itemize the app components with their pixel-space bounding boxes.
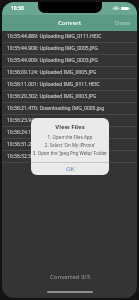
button[interactable]: 10:36:21.470: Downloading IMG_0005.jpg <box>2 103 137 115</box>
staticText: 2. Select 'On My iPhone' <box>31 142 109 148</box>
button[interactable]: 10:36:11.001: Uploaded IMG_0111.HEIC <box>2 79 137 91</box>
staticText: Convert <box>58 19 82 27</box>
button[interactable]: 10:35:44.909: Uploading IMG_0003.JPG <box>2 55 137 67</box>
staticText: 10:36:23.945: Downloading IMG_0003.jpg <box>7 117 105 124</box>
staticText: 10:36:21.470: Downloading IMG_0005.jpg <box>7 105 105 112</box>
staticText: Done <box>115 19 131 27</box>
button[interactable]: 10:36:09.124: Uploaded IMG_0005.JPG <box>2 67 137 79</box>
button[interactable]: 10:36:24.116: Downloaded IMG_0005.jpg <box>2 127 137 139</box>
staticText: 1. Open the Files App <box>31 134 109 140</box>
button[interactable]: 10:35:44.908: Uploading IMG_0005.JPG <box>2 43 137 55</box>
button[interactable]: 10:35:44.889: Uploading IMG_0111.HEIC <box>2 31 137 43</box>
staticText: 10:36:09.124: Uploaded IMG_0005.JPG <box>7 69 97 76</box>
staticText: 10:36:20.302: Uploaded IMG_0003.JPG <box>7 93 97 100</box>
staticText: 10:36 <box>11 5 24 12</box>
staticText: Converted 3/3 <box>50 273 90 281</box>
staticText: View Files <box>31 123 109 131</box>
button[interactable]: 10:36:32.519: Downloaded IMG_0111.jpg <box>2 151 137 163</box>
staticText: OK <box>66 165 75 173</box>
staticText: 10:36:32.519: Downloaded IMG_0111.jpg <box>7 153 103 160</box>
staticText: 10:35:44.889: Uploading IMG_0111.HEIC <box>7 33 102 40</box>
staticText: 10:36:24.116: Downloaded IMG_0005.jpg <box>7 129 103 136</box>
button[interactable]: Done <box>109 15 137 31</box>
staticText: 10:35:44.908: Uploading IMG_0005.JPG <box>7 45 98 52</box>
button[interactable]: 10:36:31.203: Downloaded IMG_0003.jpg <box>2 139 137 151</box>
staticText: 10:35:44.909: Uploading IMG_0003.JPG <box>7 57 98 64</box>
staticText: 10:36:11.001: Uploaded IMG_0111.HEIC <box>7 81 100 88</box>
staticText: 10:36:31.203: Downloaded IMG_0003.jpg <box>7 141 103 148</box>
button[interactable]: 10:36:20.302: Uploaded IMG_0003.JPG <box>2 91 137 103</box>
button[interactable]: 10:36:23.945: Downloading IMG_0003.jpg <box>2 115 137 127</box>
button[interactable]: OK <box>31 163 109 175</box>
staticText: 3. Open the 'Jpeg Png Webp' Folder <box>31 150 109 156</box>
